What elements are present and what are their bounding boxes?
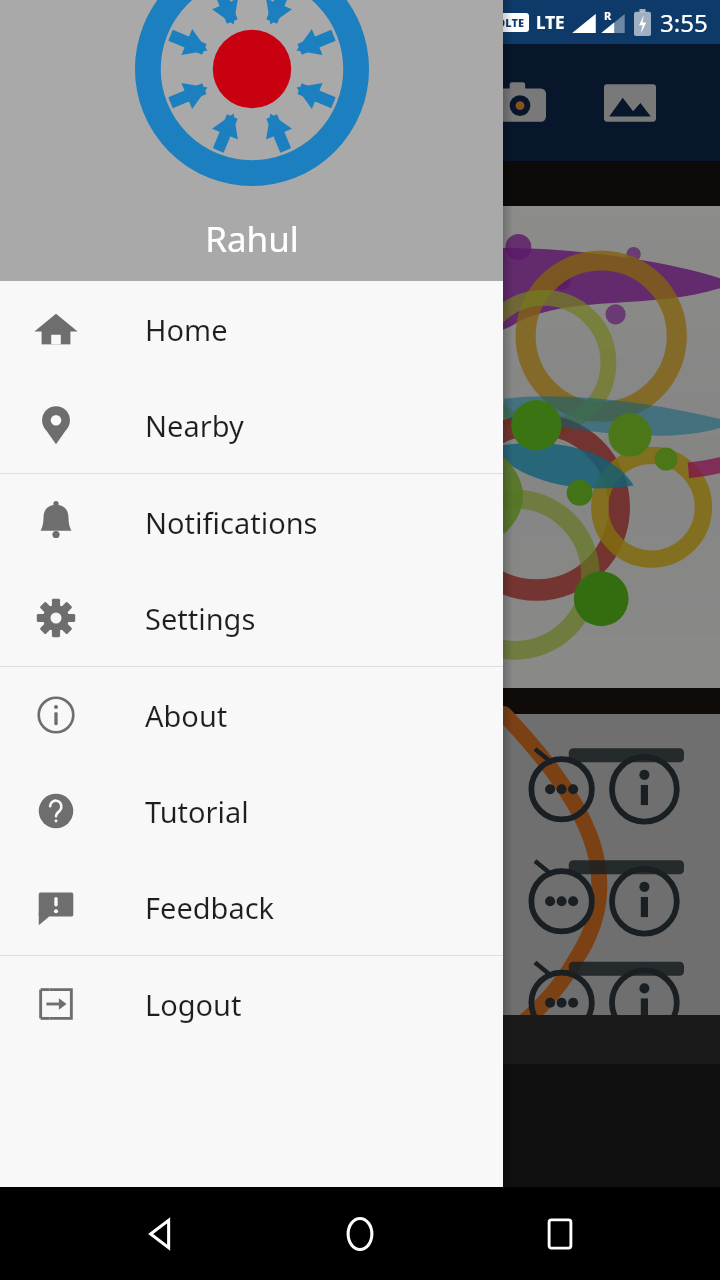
staticText: Notifications: [145, 503, 318, 542]
button[interactable]: Settings: [0, 570, 503, 666]
button[interactable]: Gallery: [597, 70, 663, 136]
button[interactable]: About: [0, 667, 503, 763]
staticText: Tutorial: [145, 792, 249, 831]
button[interactable]: Home: [320, 1194, 400, 1274]
staticText: Nearby: [145, 406, 244, 445]
staticText: VOLTE: [489, 15, 525, 30]
staticText: Settings: [145, 599, 256, 638]
button[interactable]: Recent apps: [520, 1194, 600, 1274]
button[interactable]: Notifications: [0, 474, 503, 570]
staticText: About: [145, 696, 228, 735]
staticText: Rahul: [205, 215, 299, 263]
button[interactable]: Nearby: [0, 377, 503, 473]
staticText: Feedback: [145, 888, 275, 927]
staticText: R: [604, 8, 612, 23]
button[interactable]: Back: [120, 1194, 200, 1274]
button[interactable]: Feedback: [0, 859, 503, 955]
staticText: 3:55: [660, 6, 708, 39]
button[interactable]: Tutorial: [0, 763, 503, 859]
button[interactable]: Logout: [0, 956, 503, 1052]
staticText: Home: [145, 310, 228, 349]
button[interactable]: Camera: [487, 70, 553, 136]
staticText: Logout: [145, 985, 242, 1024]
staticText: LTE: [536, 11, 565, 34]
button[interactable]: Home: [0, 281, 503, 377]
